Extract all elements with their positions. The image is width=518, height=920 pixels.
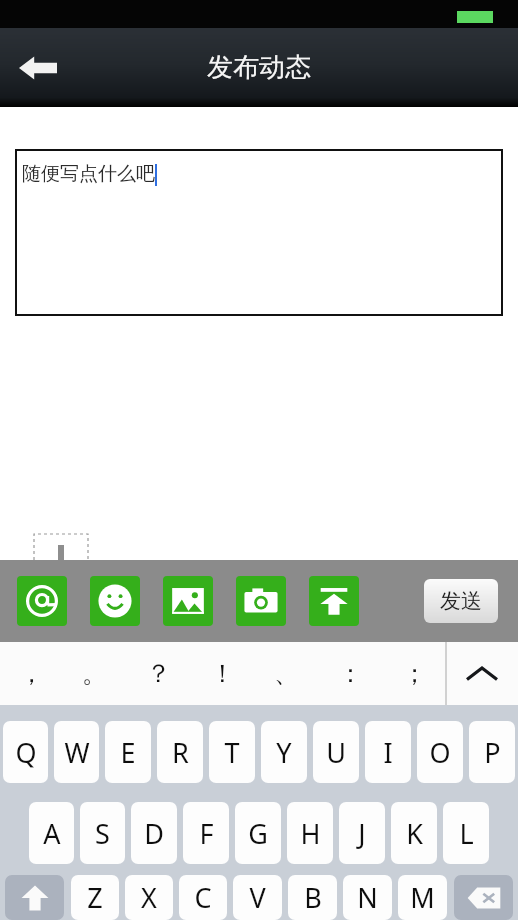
- staticText: ；: [402, 658, 427, 689]
- staticText: C: [194, 879, 212, 916]
- button[interactable]: B: [288, 875, 337, 920]
- button[interactable]: G: [235, 802, 281, 864]
- staticText: D: [144, 815, 164, 852]
- staticText: X: [141, 879, 157, 916]
- staticText: B: [304, 879, 322, 916]
- button[interactable]: 。: [63, 642, 126, 705]
- button[interactable]: Y: [261, 721, 307, 783]
- button[interactable]: ：: [318, 642, 382, 705]
- button[interactable]: M: [398, 875, 447, 920]
- button[interactable]: Gallery: [163, 576, 213, 626]
- staticText: M: [410, 879, 435, 916]
- button[interactable]: 发送: [424, 579, 498, 623]
- button[interactable]: Backspace: [454, 875, 513, 920]
- staticText: G: [248, 815, 268, 852]
- button[interactable]: F: [183, 802, 229, 864]
- staticText: 随便写点什么吧: [22, 162, 155, 186]
- button[interactable]: X: [125, 875, 173, 920]
- button[interactable]: E: [105, 721, 151, 783]
- button[interactable]: Q: [3, 721, 48, 783]
- button[interactable]: U: [313, 721, 359, 783]
- staticText: S: [95, 815, 110, 852]
- staticText: K: [406, 815, 423, 852]
- staticText: ？: [146, 658, 171, 689]
- button[interactable]: I: [365, 721, 411, 783]
- staticText: ！: [210, 658, 235, 689]
- button[interactable]: A: [29, 802, 74, 864]
- button[interactable]: 、: [254, 642, 318, 705]
- button[interactable]: N: [343, 875, 392, 920]
- button[interactable]: O: [417, 721, 463, 783]
- button[interactable]: H: [287, 802, 333, 864]
- button[interactable]: ！: [190, 642, 254, 705]
- staticText: H: [300, 815, 321, 852]
- staticText: I: [383, 734, 393, 771]
- button[interactable]: 随便写点什么吧: [16, 150, 502, 315]
- staticText: L: [459, 815, 474, 852]
- button[interactable]: Shift: [5, 875, 64, 920]
- staticText: J: [358, 815, 366, 852]
- staticText: 发送: [440, 588, 482, 614]
- button[interactable]: Collapse keyboard: [446, 642, 518, 705]
- button[interactable]: ？: [126, 642, 190, 705]
- button[interactable]: Back: [8, 38, 68, 98]
- staticText: 。: [82, 658, 107, 689]
- staticText: V: [249, 879, 266, 916]
- button[interactable]: C: [179, 875, 227, 920]
- staticText: N: [357, 879, 378, 916]
- button[interactable]: Camera: [236, 576, 286, 626]
- staticText: U: [326, 734, 346, 771]
- staticText: ：: [338, 658, 363, 689]
- staticText: ，: [19, 658, 44, 689]
- button[interactable]: D: [131, 802, 177, 864]
- staticText: Q: [15, 734, 37, 771]
- staticText: A: [43, 815, 61, 852]
- staticText: Z: [87, 879, 103, 916]
- staticText: R: [172, 734, 189, 771]
- button[interactable]: L: [443, 802, 489, 864]
- button[interactable]: ，: [0, 642, 63, 705]
- button[interactable]: P: [469, 721, 515, 783]
- button[interactable]: Emoji: [90, 576, 140, 626]
- staticText: W: [64, 734, 90, 771]
- button[interactable]: V: [233, 875, 282, 920]
- staticText: F: [199, 815, 214, 852]
- staticText: 、: [274, 658, 299, 689]
- staticText: O: [429, 734, 451, 771]
- staticText: E: [120, 734, 136, 771]
- button[interactable]: R: [157, 721, 203, 783]
- button[interactable]: S: [80, 802, 125, 864]
- button[interactable]: T: [209, 721, 255, 783]
- button[interactable]: Upload: [309, 576, 359, 626]
- button[interactable]: W: [54, 721, 99, 783]
- staticText: P: [484, 734, 501, 771]
- button[interactable]: ；: [382, 642, 446, 705]
- button[interactable]: J: [339, 802, 385, 864]
- staticText: 发布动态: [207, 51, 311, 84]
- button[interactable]: K: [391, 802, 437, 864]
- staticText: Y: [276, 734, 292, 771]
- button[interactable]: Mention: [17, 576, 67, 626]
- staticText: T: [224, 734, 240, 771]
- button[interactable]: Z: [71, 875, 119, 920]
